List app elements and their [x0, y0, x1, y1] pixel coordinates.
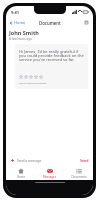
button[interactable]: Send a message	[17, 155, 78, 166]
staticText: Send a message	[17, 159, 42, 163]
button[interactable]: Rate 5 stars	[39, 75, 43, 79]
button[interactable]: Send	[80, 155, 89, 166]
staticText: Hi James, I'd be really grateful if you …	[19, 49, 85, 62]
staticText: A few hours ago	[9, 37, 32, 41]
staticText: Home	[14, 20, 26, 25]
staticText: Tap to rate this message	[19, 81, 47, 84]
button[interactable]: Home	[9, 20, 26, 25]
button[interactable]: Rate 4 stars	[34, 75, 38, 79]
staticText: Document	[39, 20, 61, 26]
staticText: Documents	[71, 175, 87, 179]
button[interactable]: Documents	[64, 166, 93, 180]
staticText: 9:41	[11, 10, 19, 15]
button[interactable]: Add attachment	[10, 158, 15, 163]
button[interactable]: Rate 1 stars	[19, 75, 23, 79]
button[interactable]: Rate 2 stars	[24, 75, 28, 79]
button[interactable]: Messages	[35, 166, 64, 180]
staticText: Send	[80, 158, 89, 163]
staticText: Messages	[43, 175, 56, 179]
button[interactable]: Home	[6, 166, 35, 180]
staticText: John Smith	[9, 29, 39, 36]
button[interactable]: Document info	[84, 20, 89, 25]
button[interactable]: Rate 3 stars	[29, 75, 33, 79]
staticText: Home	[17, 175, 25, 179]
